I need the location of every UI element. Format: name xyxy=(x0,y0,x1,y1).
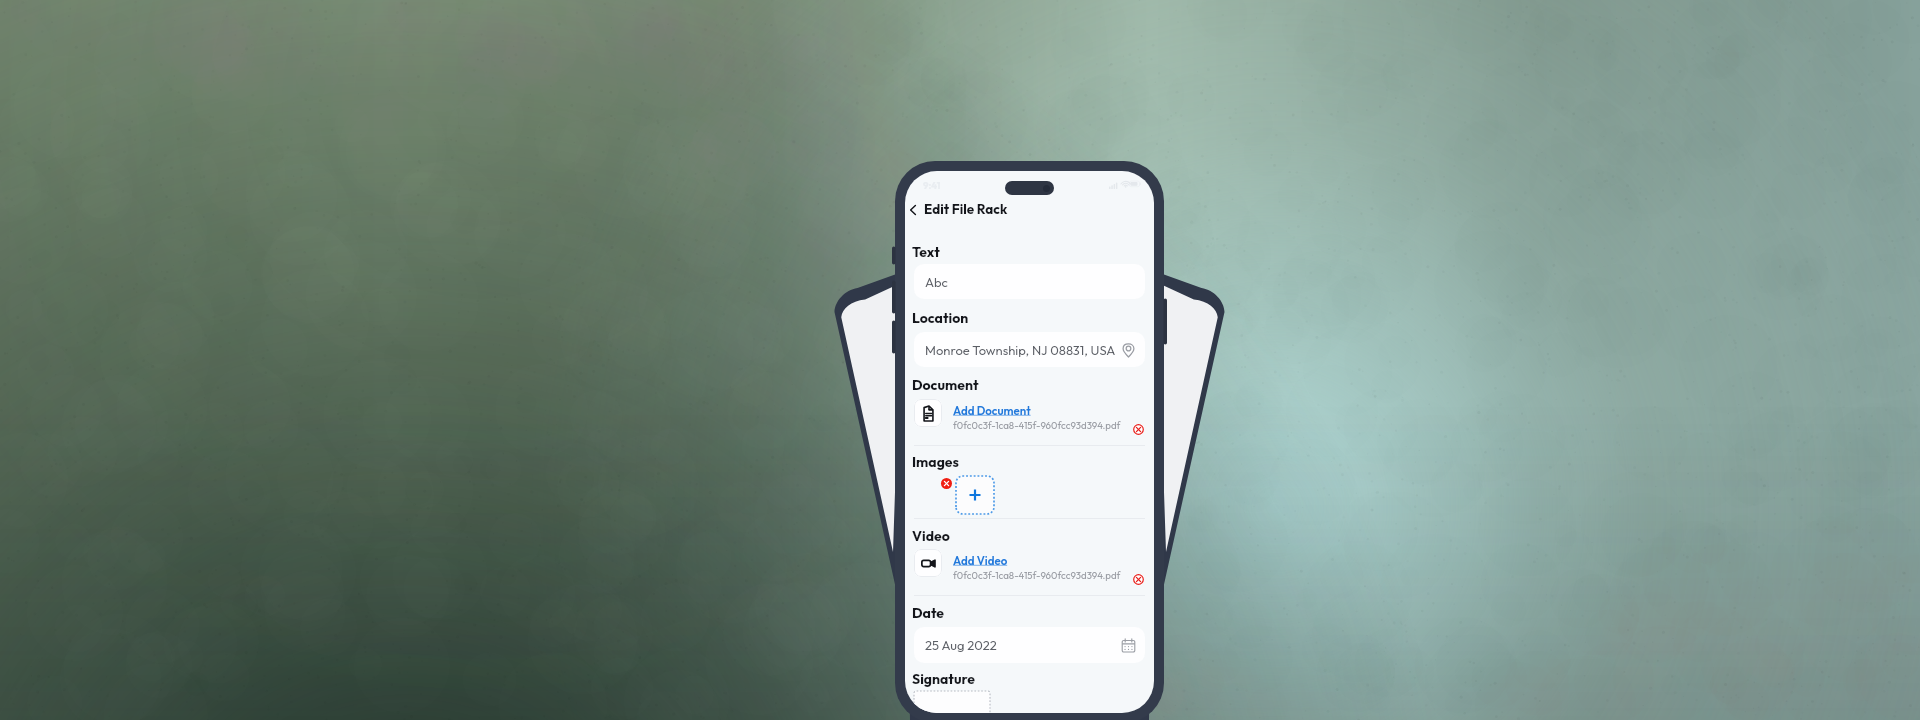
button[interactable]: Document file xyxy=(914,399,942,427)
button[interactable]: Remove xyxy=(1132,573,1145,586)
staticText: f0fc0c3f-1ca8-415f-960fcc93d394.pdf xyxy=(953,569,1121,581)
staticText: Text xyxy=(912,243,940,261)
staticText: 9:41 xyxy=(923,179,941,191)
button[interactable]: Remove image xyxy=(940,477,952,489)
button[interactable]: Video file xyxy=(914,549,942,577)
staticText: Monroe Township, NJ 08831, USA xyxy=(925,342,1121,358)
staticText: 25 Aug 2022 xyxy=(925,637,1121,653)
staticText: Signature xyxy=(912,670,975,688)
staticText: Date xyxy=(912,604,945,622)
button[interactable]: 25 Aug 2022 xyxy=(914,627,1145,663)
staticText: Images xyxy=(912,453,959,471)
button[interactable]: Remove xyxy=(1132,423,1145,436)
button[interactable]: Add Video xyxy=(953,553,1008,567)
staticText: Abc xyxy=(925,274,948,290)
button[interactable]: Add Document xyxy=(953,403,1031,417)
button[interactable]: Back xyxy=(905,201,922,219)
staticText: Location xyxy=(912,309,969,327)
staticText: Document xyxy=(912,376,979,394)
staticText: Video xyxy=(912,527,950,545)
button[interactable]: Signature pad xyxy=(914,691,990,713)
staticText: f0fc0c3f-1ca8-415f-960fcc93d394.pdf xyxy=(953,419,1121,431)
button[interactable]: Monroe Township, NJ 08831, USA xyxy=(914,332,1145,367)
staticText: Edit File Rack xyxy=(924,200,1008,217)
button[interactable]: Add image xyxy=(956,476,994,514)
button[interactable]: Abc xyxy=(914,264,1145,299)
